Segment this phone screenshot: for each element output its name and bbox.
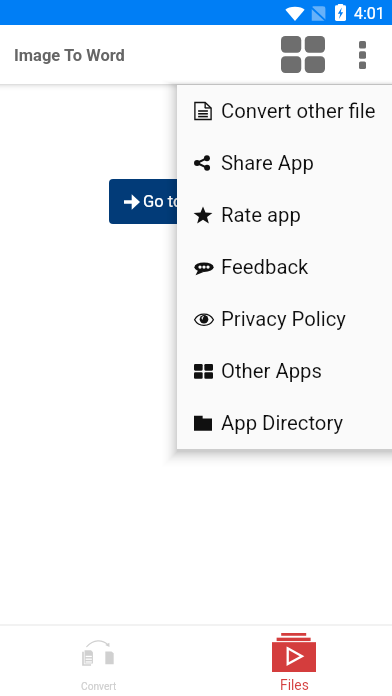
staticText: Convert other file: [221, 99, 376, 123]
staticText: App Directory: [221, 411, 344, 435]
staticText: Rate app: [221, 203, 301, 227]
staticText: Other Apps: [221, 359, 322, 383]
button[interactable]: Other Apps: [177, 345, 392, 397]
button[interactable]: Rate app: [177, 189, 392, 241]
button[interactable]: Files: [196, 626, 392, 696]
button[interactable]: Share App: [177, 137, 392, 189]
staticText: Privacy Policy: [221, 307, 346, 331]
button[interactable]: Grid view: [269, 25, 337, 84]
staticText: Convert: [81, 681, 117, 693]
staticText: Feedback: [221, 255, 309, 279]
staticText: Share App: [221, 151, 314, 175]
staticText: Go to File: [143, 192, 213, 211]
button[interactable]: Go to File: [109, 179, 228, 224]
button[interactable]: Privacy Policy: [177, 293, 392, 345]
staticText: Image To Word: [14, 46, 125, 65]
button[interactable]: Convert: [0, 626, 196, 696]
button[interactable]: Feedback: [177, 241, 392, 293]
staticText: Files: [280, 677, 309, 693]
button[interactable]: More options: [340, 25, 384, 84]
staticText: 4:01: [354, 4, 385, 23]
button[interactable]: App Directory: [177, 397, 392, 449]
button[interactable]: Convert other file: [177, 85, 392, 137]
